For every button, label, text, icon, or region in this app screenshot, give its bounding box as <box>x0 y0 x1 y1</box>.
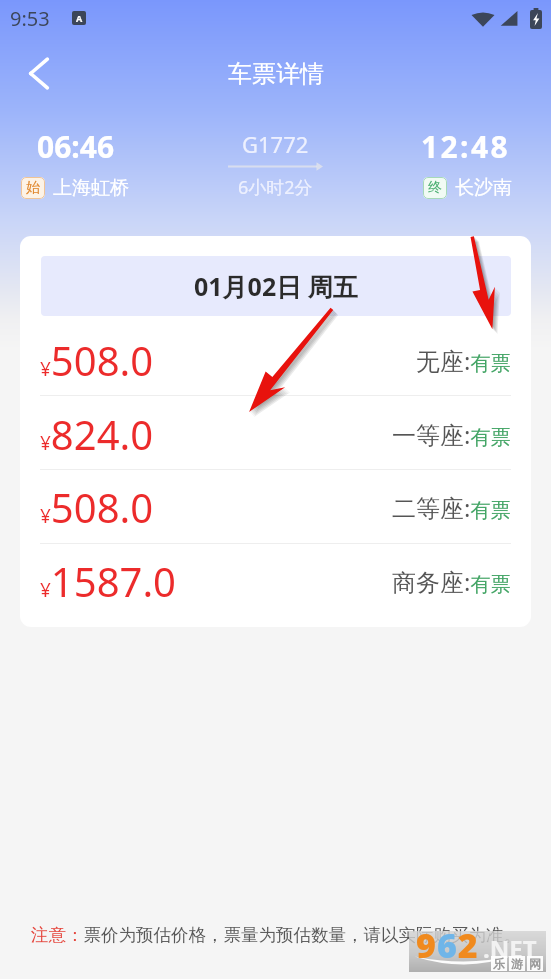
staticText: A <box>76 12 83 24</box>
staticText: 终 <box>428 179 442 197</box>
staticText: 乐 <box>493 956 505 971</box>
staticText: 游 <box>511 956 523 971</box>
staticText: 始 <box>26 179 40 197</box>
staticText: 注意：票价为预估价格，票量为预估数量，请以实际购买为准。 <box>31 924 521 946</box>
staticText: G1772 <box>242 129 309 159</box>
staticText: 12:48 <box>421 126 511 167</box>
staticText: 一等座:有票 <box>392 418 511 451</box>
staticText: 上海虹桥 <box>53 176 129 200</box>
button[interactable]: ¥508.0 <box>20 317 531 395</box>
staticText: 长沙南 <box>455 176 512 200</box>
staticText: ¥508.0 <box>40 333 154 387</box>
staticText: 01月02日 周五 <box>194 269 358 303</box>
staticText: 网 <box>529 956 541 971</box>
button[interactable]: ¥824.0 <box>20 395 531 469</box>
staticText: ¥508.0 <box>40 480 154 534</box>
button[interactable]: ¥508.0 <box>20 469 531 543</box>
staticText: ¥1587.0 <box>40 554 176 608</box>
staticText: 6小时2分 <box>238 175 313 200</box>
button[interactable]: Back <box>11 45 67 101</box>
staticText: 商务座:有票 <box>392 565 511 598</box>
staticText: 06:46 <box>37 126 115 167</box>
staticText: 二等座:有票 <box>392 491 511 524</box>
staticText: 962 <box>416 922 479 963</box>
staticText: ¥824.0 <box>40 407 154 461</box>
button[interactable]: ¥1587.0 <box>20 543 531 627</box>
staticText: 无座:有票 <box>416 344 511 377</box>
staticText: .NET <box>483 932 537 965</box>
staticText: 9:53 <box>10 5 50 32</box>
staticText: 车票详情 <box>228 59 324 89</box>
